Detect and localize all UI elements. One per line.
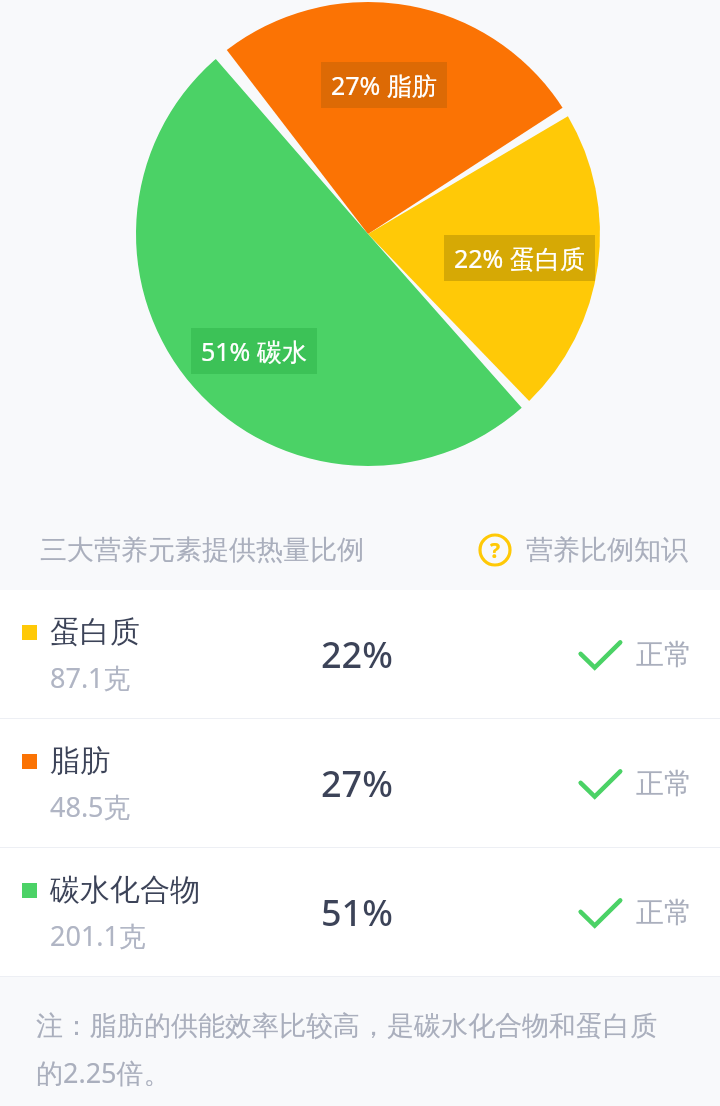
staticText: 正常: [636, 895, 692, 930]
staticText: 注：脂肪的供能效率比较高，是碳水化合物和蛋白质 的2.25倍。: [36, 1009, 657, 1091]
staticText: 三大营养元素提供热量比例: [40, 533, 364, 567]
staticText: 201.1克: [50, 917, 147, 954]
staticText: 27% 脂肪: [331, 68, 437, 102]
staticText: 正常: [636, 637, 692, 672]
staticText: 22% 蛋白质: [454, 241, 585, 275]
staticText: 蛋白质: [50, 613, 140, 651]
button[interactable]: 碳水化合物: [0, 848, 720, 976]
staticText: 87.1克: [50, 659, 131, 696]
button[interactable]: 脂肪: [0, 719, 720, 847]
staticText: 48.5克: [50, 788, 131, 825]
button[interactable]: 蛋白质: [0, 590, 720, 718]
staticText: 脂肪: [50, 742, 110, 780]
staticText: 51%: [321, 888, 393, 937]
staticText: ?: [490, 536, 501, 565]
staticText: 51% 碳水: [201, 334, 307, 368]
staticText: 正常: [636, 766, 692, 801]
staticText: 22%: [321, 630, 393, 679]
button[interactable]: 营养比例知识: [472, 527, 694, 573]
other: 营养比例知识: [478, 533, 512, 567]
staticText: 碳水化合物: [50, 871, 200, 909]
staticText: 27%: [321, 759, 393, 808]
staticText: 营养比例知识: [526, 533, 688, 567]
